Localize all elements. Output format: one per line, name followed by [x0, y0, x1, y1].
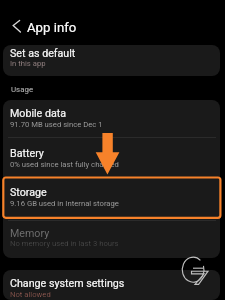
staticText: Battery	[10, 147, 44, 160]
button[interactable]	[3, 100, 220, 138]
staticText: 0% used since last fully charged	[10, 160, 119, 169]
button[interactable]: Back	[5, 14, 29, 38]
staticText: Memory	[10, 227, 50, 240]
button[interactable]	[3, 138, 220, 177]
staticText: No memory used in last 3 hours	[10, 239, 119, 248]
staticText: Change system settings	[10, 277, 125, 290]
button[interactable]	[3, 270, 220, 300]
button[interactable]	[3, 45, 220, 76]
staticText: Usage	[11, 85, 34, 94]
button[interactable]	[3, 219, 220, 259]
staticText: Storage	[10, 186, 47, 199]
staticText: 9.16 GB used in Internal storage	[10, 199, 119, 208]
other: Watermark	[180, 255, 212, 287]
staticText: In this app	[10, 59, 46, 68]
staticText: Mobile data	[10, 107, 67, 120]
staticText: Not allowed	[10, 290, 51, 299]
staticText: App info	[27, 20, 77, 35]
staticText: 91.70 MB used since Dec 1	[10, 120, 103, 129]
staticText: Set as default	[10, 47, 76, 60]
button[interactable]	[3, 177, 220, 219]
